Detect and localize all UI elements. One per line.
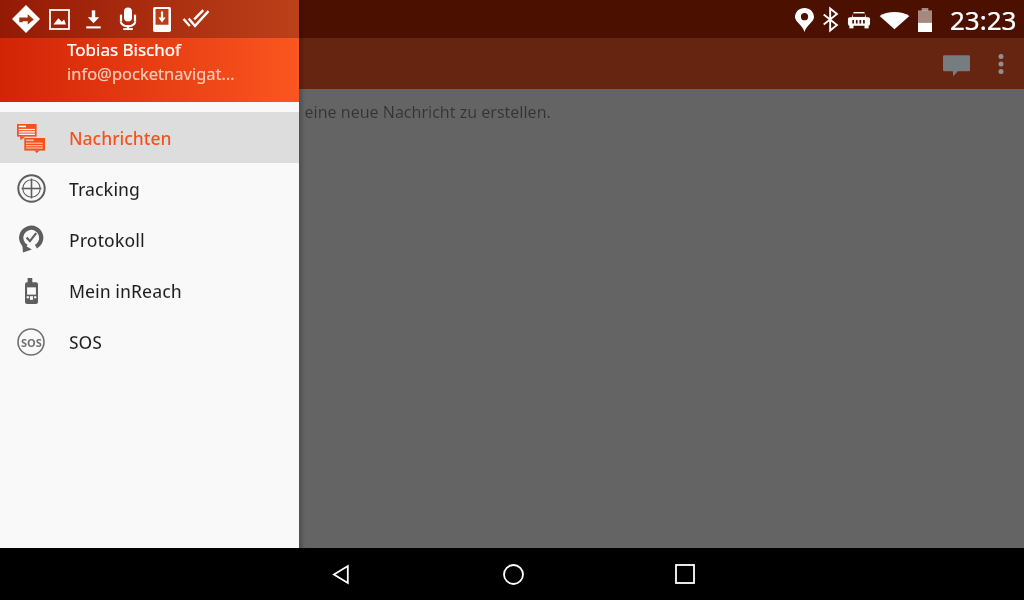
button[interactable]: Home (428, 548, 598, 600)
button[interactable]: Mein inReach (0, 265, 299, 316)
staticText: SOS (21, 335, 42, 350)
staticText: Tobias Bischof (67, 38, 181, 61)
staticText: Protokoll (69, 228, 145, 252)
staticText: Tippen Sie auf das Symbol rechts, um ein… (20, 101, 551, 123)
button[interactable]: Nachrichten (0, 112, 299, 163)
staticText: Mein inReach (69, 279, 182, 303)
button[interactable]: New message (923, 38, 989, 89)
staticText: Nachrichten (69, 126, 172, 150)
staticText: 23:23 (950, 2, 1017, 37)
button[interactable]: Back (256, 548, 426, 600)
button[interactable]: SOS (0, 316, 299, 367)
staticText: SOS (69, 330, 102, 354)
staticText: info@pocketnavigat… (67, 62, 235, 84)
button[interactable]: More options (989, 38, 1013, 89)
button[interactable]: Protokoll (0, 214, 299, 265)
button[interactable]: Recent apps (600, 548, 770, 600)
button[interactable]: Tracking (0, 163, 299, 214)
button[interactable]: Tobias Bischof (0, 0, 299, 102)
staticText: Tracking (69, 177, 140, 201)
